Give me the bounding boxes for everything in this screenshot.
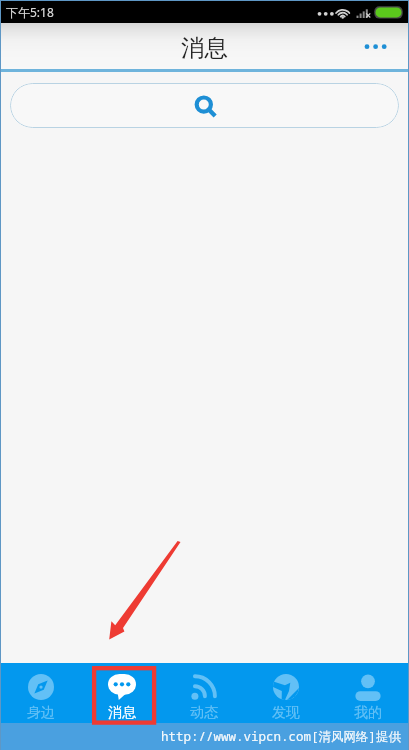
- staticText: 动态: [190, 704, 218, 722]
- staticText: 发现: [272, 704, 300, 722]
- staticText: 消息: [181, 33, 228, 63]
- button[interactable]: 我的: [327, 663, 409, 723]
- button[interactable]: 发现: [245, 663, 327, 723]
- button[interactable]: 消息: [81, 663, 163, 723]
- staticText: 下午5:18: [6, 4, 54, 20]
- button[interactable]: More options: [353, 26, 397, 70]
- button[interactable]: 身边: [0, 663, 81, 723]
- staticText: 消息: [108, 704, 136, 722]
- other: Search: [193, 94, 217, 118]
- staticText: 身边: [27, 704, 55, 722]
- button[interactable]: Search: [10, 83, 399, 128]
- button[interactable]: 动态: [163, 663, 245, 723]
- staticText: 我的: [354, 704, 382, 722]
- staticText: http://www.vipcn.com[清风网络]提供: [161, 728, 402, 745]
